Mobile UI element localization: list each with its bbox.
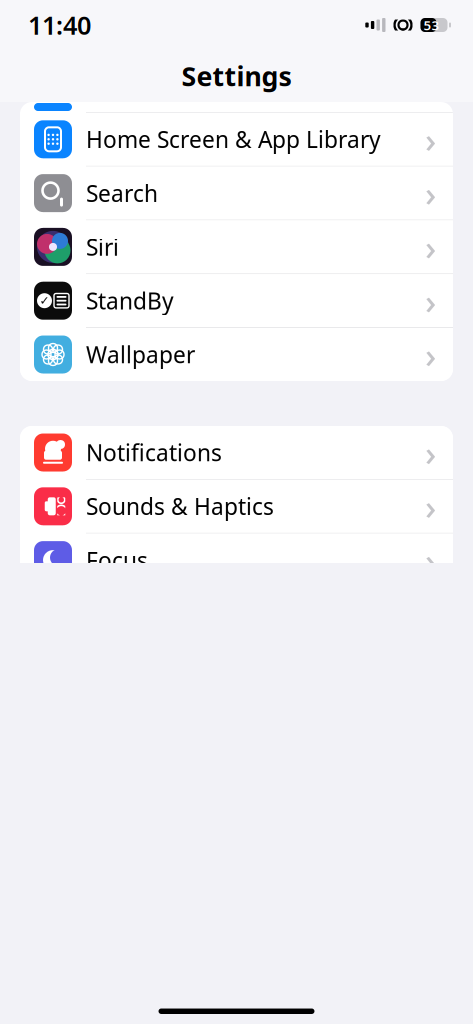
- staticText: Focus: [86, 545, 148, 575]
- staticText: ›: [425, 537, 436, 583]
- staticText: Search: [86, 178, 158, 208]
- staticText: ✓: [39, 294, 49, 307]
- staticText: ›: [425, 170, 436, 216]
- staticText: Siri: [86, 232, 119, 262]
- staticText: Home Screen & App Library: [86, 124, 381, 154]
- staticText: ›: [425, 429, 436, 475]
- staticText: ›: [425, 331, 436, 377]
- button[interactable]: Sounds & Haptics: [20, 480, 453, 534]
- staticText: ›: [425, 224, 436, 270]
- staticText: ›: [425, 116, 436, 162]
- staticText: ›: [425, 483, 436, 529]
- button[interactable]: Siri: [20, 220, 453, 274]
- button[interactable]: Focus: [20, 534, 453, 587]
- staticText: Notifications: [86, 437, 222, 467]
- button[interactable]: Notifications: [20, 426, 453, 480]
- staticText: 53: [423, 16, 439, 34]
- staticText: Sounds & Haptics: [86, 491, 274, 521]
- staticText: ›: [425, 278, 436, 324]
- button[interactable]: Search: [20, 167, 453, 220]
- button[interactable]: Home Screen & App Library: [20, 113, 453, 167]
- button[interactable]: Wallet: [20, 999, 453, 1024]
- staticText: Wallpaper: [86, 339, 195, 369]
- staticText: 11:40: [28, 8, 91, 42]
- button[interactable]: ✓: [20, 274, 453, 328]
- staticText: StandBy: [86, 286, 174, 316]
- staticText: Settings: [181, 58, 291, 94]
- button[interactable]: Wallpaper: [20, 328, 453, 381]
